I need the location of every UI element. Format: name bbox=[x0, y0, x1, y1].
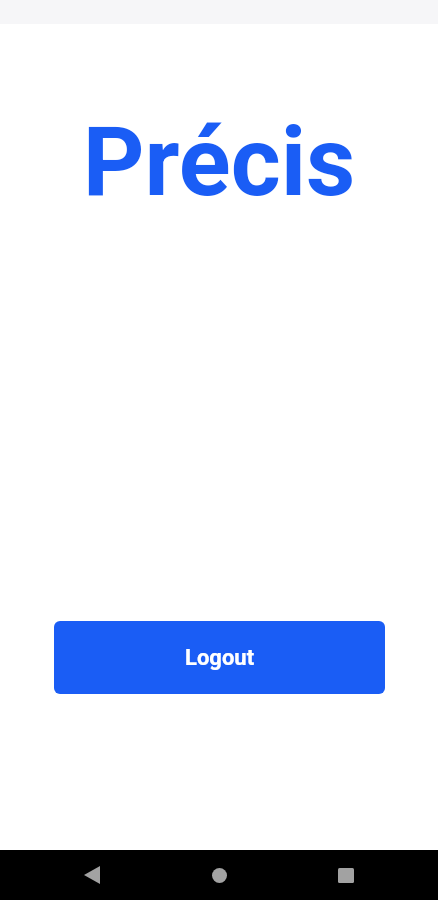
staticText: Précis bbox=[0, 106, 438, 219]
button[interactable]: Recent apps bbox=[318, 850, 373, 900]
button[interactable]: Logout bbox=[54, 621, 385, 694]
button[interactable]: Back bbox=[64, 850, 119, 900]
staticText: Logout bbox=[185, 645, 255, 671]
button[interactable]: Home bbox=[191, 850, 247, 900]
